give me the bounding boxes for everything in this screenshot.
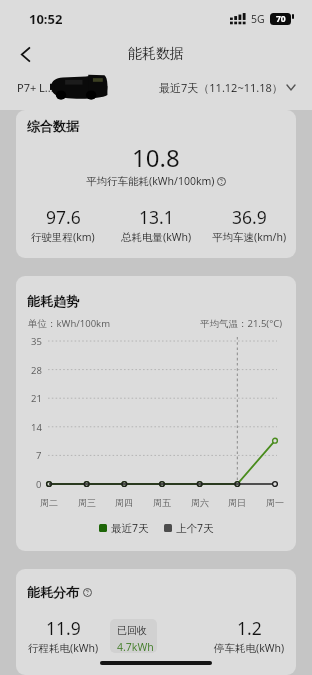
- staticText: 28: [31, 364, 42, 376]
- staticText: 36.9: [232, 205, 267, 229]
- button[interactable]: 综合数据: [16, 110, 296, 258]
- staticText: 周日: [228, 497, 246, 508]
- staticText: 能耗趋势: [27, 293, 79, 309]
- staticText: 10.8: [132, 141, 180, 174]
- staticText: 7: [36, 449, 42, 461]
- button[interactable]: 能耗分布: [16, 569, 296, 675]
- staticText: 21: [31, 392, 42, 404]
- staticText: 平均车速(km/h): [212, 230, 287, 244]
- staticText: 行驶里程(km): [31, 230, 95, 244]
- staticText: 0: [36, 478, 42, 490]
- button[interactable]: 最近7天（11.12~11.18）: [159, 80, 296, 95]
- button[interactable]: Back: [11, 40, 39, 68]
- staticText: 70: [276, 13, 286, 25]
- staticText: 5G: [251, 12, 265, 26]
- staticText: 总耗电量(kWh): [121, 230, 192, 244]
- staticText: P7+ L...: [17, 80, 54, 95]
- staticText: 平均行车能耗(kWh/100km): [86, 174, 215, 188]
- button[interactable]: 已回收: [110, 619, 157, 653]
- staticText: 周三: [78, 497, 96, 508]
- button[interactable]: P7+ L...: [17, 80, 54, 95]
- staticText: 停车耗电(kWh): [214, 641, 285, 655]
- staticText: 周四: [115, 497, 133, 508]
- staticText: 11.9: [46, 616, 81, 640]
- staticText: 周五: [153, 497, 171, 508]
- button[interactable]: 上个7天: [164, 521, 214, 535]
- staticText: 最近7天: [111, 521, 149, 535]
- staticText: 最近7天（11.12~11.18）: [159, 80, 283, 95]
- staticText: 13.1: [139, 205, 174, 229]
- staticText: 1.2: [237, 616, 262, 640]
- staticText: 97.6: [46, 205, 81, 229]
- staticText: 已回收: [117, 624, 147, 637]
- staticText: 4.7kWh: [117, 640, 154, 653]
- staticText: 综合数据: [27, 118, 79, 134]
- staticText: 单位：kWh/100km: [28, 317, 111, 330]
- staticText: 周二: [40, 497, 58, 508]
- staticText: 14: [31, 421, 42, 433]
- button[interactable]: 最近7天: [99, 521, 149, 535]
- staticText: 能耗数据: [128, 45, 184, 63]
- staticText: 周六: [191, 497, 209, 508]
- staticText: 行程耗电(kWh): [28, 641, 99, 655]
- staticText: 上个7天: [176, 521, 214, 535]
- staticText: 能耗分布: [27, 584, 79, 600]
- staticText: 平均气温：21.5(°C): [200, 317, 283, 330]
- staticText: 周一: [266, 497, 284, 508]
- staticText: 10:52: [29, 10, 63, 28]
- staticText: 35: [31, 335, 42, 347]
